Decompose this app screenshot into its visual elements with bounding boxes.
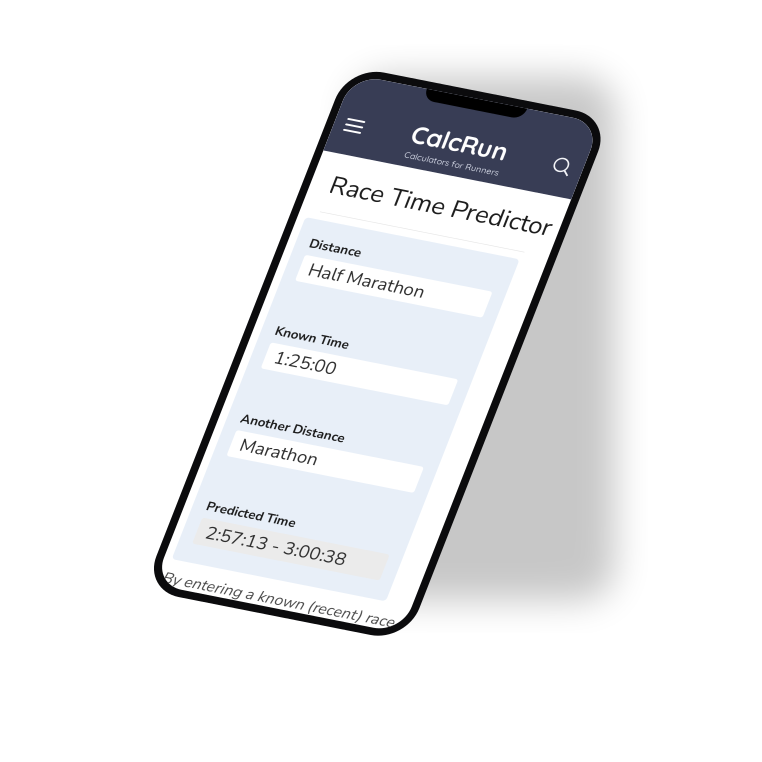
button[interactable]: Marathon (45, 594, 340, 637)
button[interactable]: Search (340, 64, 402, 118)
staticText: Race Time Predictor (42, 162, 390, 215)
button[interactable]: 1:25:00 (45, 449, 340, 492)
staticText: Half Marathon (59, 306, 241, 344)
staticText: Marathon (59, 596, 181, 634)
staticText: Another Distance (45, 561, 208, 588)
button[interactable]: Half Marathon (45, 304, 340, 347)
